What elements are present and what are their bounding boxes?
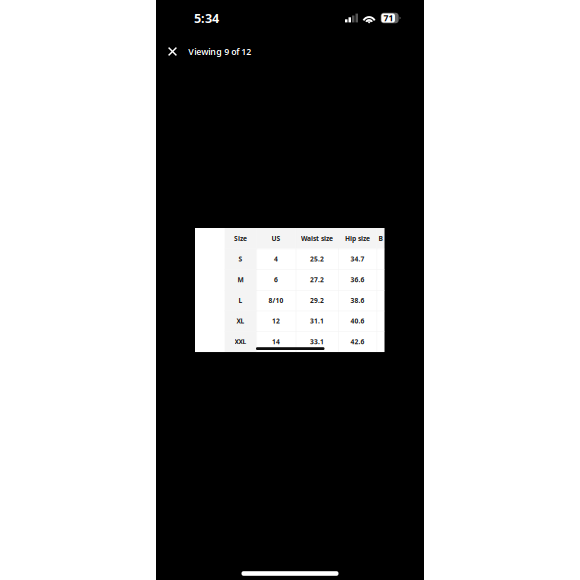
button[interactable]: Size chart photo, 9 of 12 [195, 228, 384, 352]
staticText: US [272, 234, 281, 243]
staticText: 25.2 [310, 254, 324, 264]
staticText: 29.2 [310, 296, 324, 305]
staticText: 5:34 [194, 9, 219, 27]
staticText: B [378, 234, 382, 243]
staticText: L [238, 296, 242, 305]
staticText: 27.2 [310, 275, 324, 284]
staticText: 31.1 [310, 316, 324, 326]
staticText: 40.6 [350, 316, 364, 326]
staticText: 4 [274, 254, 278, 264]
staticText: Waist size [301, 234, 333, 243]
staticText: 36.6 [350, 275, 364, 284]
staticText: 14 [272, 337, 280, 346]
staticText: S [238, 254, 242, 264]
button[interactable]: Close [161, 40, 183, 62]
staticText: XL [236, 316, 244, 326]
staticText: 8/10 [269, 296, 284, 305]
staticText: M [237, 275, 243, 284]
staticText: 33.1 [310, 337, 324, 346]
staticText: 42.6 [350, 337, 364, 346]
staticText: 6 [274, 275, 278, 284]
staticText: Size [234, 234, 247, 243]
staticText: 38.6 [350, 296, 364, 305]
staticText: 12 [272, 316, 280, 326]
staticText: 34.7 [350, 254, 364, 264]
staticText: 71 [383, 12, 393, 24]
staticText: XXL [234, 337, 246, 346]
staticText: Hip size [345, 234, 370, 243]
staticText: Viewing 9 of 12 [188, 45, 251, 57]
